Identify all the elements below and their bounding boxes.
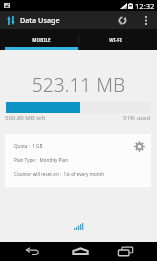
button[interactable]: Refresh [109, 11, 135, 29]
button[interactable]: Quota : 1 GB [5, 134, 151, 187]
staticText: Data Usage [20, 15, 60, 25]
button[interactable]: WI-FI [78, 29, 152, 50]
staticText: Plan Type : Monthly Plan [14, 157, 68, 163]
button[interactable]: Settings [133, 140, 146, 153]
staticText: 523.11 MB [0, 71, 157, 97]
staticText: Counter will reset on : 1st of every mon… [14, 171, 105, 177]
button[interactable]: Recent apps [105, 242, 157, 261]
staticText: Quota : 1 GB [14, 143, 43, 149]
button[interactable]: Home [53, 242, 105, 261]
staticText: MOBILE [32, 37, 51, 43]
button[interactable]: MOBILE [5, 29, 78, 50]
staticText: WI-FI [109, 37, 122, 43]
staticText: 12:32 [135, 1, 155, 11]
staticText: 500.89 MB left [5, 114, 46, 122]
button[interactable]: More options [135, 11, 157, 29]
staticText: 51% used [123, 114, 151, 122]
button[interactable]: Back [0, 242, 53, 261]
